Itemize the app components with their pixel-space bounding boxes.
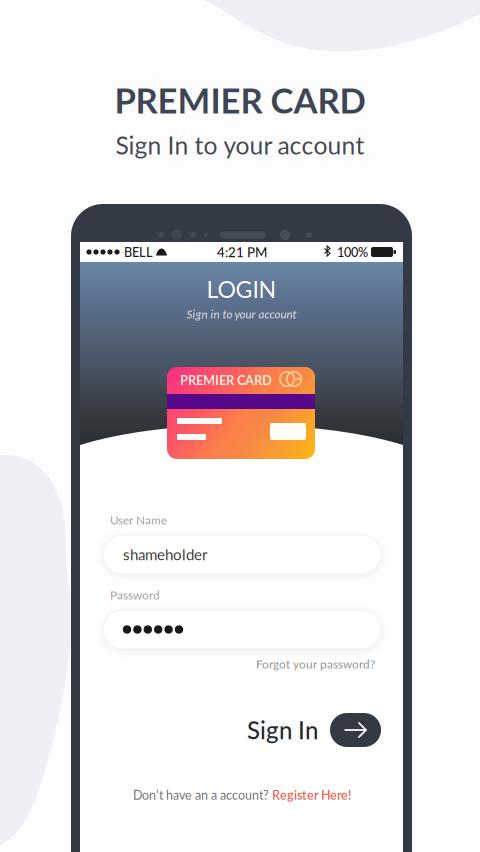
- button[interactable]: Forgot your password?: [221, 656, 375, 672]
- staticText: Forgot your password?: [256, 657, 375, 671]
- button[interactable]: shameholder: [103, 535, 381, 574]
- button[interactable]: [103, 610, 381, 649]
- button[interactable]: Sign In: [240, 710, 381, 750]
- staticText: BELL: [124, 244, 153, 260]
- staticText: PREMIER CARD: [180, 372, 272, 388]
- button[interactable]: Register Here!: [272, 787, 372, 803]
- staticText: Don't have an a account?: [133, 787, 269, 802]
- staticText: Register Here!: [272, 787, 351, 802]
- staticText: User Name: [110, 513, 167, 527]
- staticText: Sign In: [247, 716, 318, 744]
- staticText: Sign in to your account: [186, 307, 296, 321]
- staticText: LOGIN: [206, 275, 276, 303]
- staticText: 100%: [337, 244, 368, 260]
- staticText: 4:21 PM: [217, 244, 267, 260]
- staticText: shameholder: [123, 545, 207, 564]
- staticText: PREMIER CARD: [114, 79, 365, 121]
- staticText: Password: [110, 588, 160, 602]
- staticText: Sign In to your account: [115, 130, 364, 160]
